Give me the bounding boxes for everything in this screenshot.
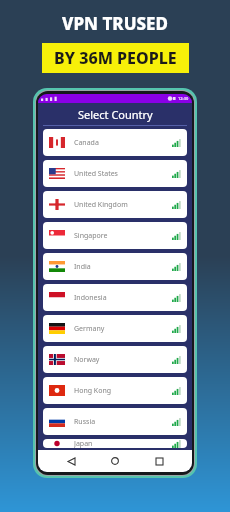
staticText: United States [74, 169, 118, 179]
staticText: Norway [74, 355, 100, 365]
other: Signal strength [172, 232, 181, 240]
button[interactable]: Singapore [43, 222, 187, 249]
staticText: Canada [74, 138, 99, 148]
staticText: Germany [74, 324, 105, 334]
button[interactable]: Canada [43, 129, 187, 156]
button[interactable]: Japan [43, 439, 187, 448]
staticText: Japan [74, 439, 93, 448]
other: Signal strength [172, 294, 181, 302]
other: Signal strength [172, 170, 181, 178]
button[interactable]: Norway [43, 346, 187, 373]
staticText: 12:30 [178, 96, 189, 101]
button[interactable]: Home [104, 450, 126, 472]
other: Signal strength [172, 325, 181, 333]
staticText: VPN TRUSED [62, 12, 168, 35]
staticText: Singapore [74, 231, 108, 241]
staticText: Indonesia [74, 293, 107, 303]
button[interactable]: Russia [43, 408, 187, 435]
other: Signal strength [172, 387, 181, 395]
other: Signal strength [172, 263, 181, 271]
button[interactable]: Recents [148, 450, 170, 472]
button[interactable]: United States [43, 160, 187, 187]
button[interactable]: India [43, 253, 187, 280]
other: Signal strength [172, 440, 181, 448]
staticText: BY 36M PEOPLE [54, 47, 177, 69]
staticText: Hong Kong [74, 386, 112, 396]
staticText: India [74, 262, 91, 272]
other: Signal strength [172, 356, 181, 364]
button[interactable]: Back [60, 450, 82, 472]
button[interactable]: Germany [43, 315, 187, 342]
other: Signal strength [172, 418, 181, 426]
other: Signal strength [172, 139, 181, 147]
other: Signal strength [172, 201, 181, 209]
button[interactable]: Hong Kong [43, 377, 187, 404]
staticText: Select Country [78, 107, 153, 122]
button[interactable]: United Kingdom [43, 191, 187, 218]
staticText: United Kingdom [74, 200, 128, 210]
staticText: Russia [74, 417, 96, 427]
button[interactable]: Indonesia [43, 284, 187, 311]
